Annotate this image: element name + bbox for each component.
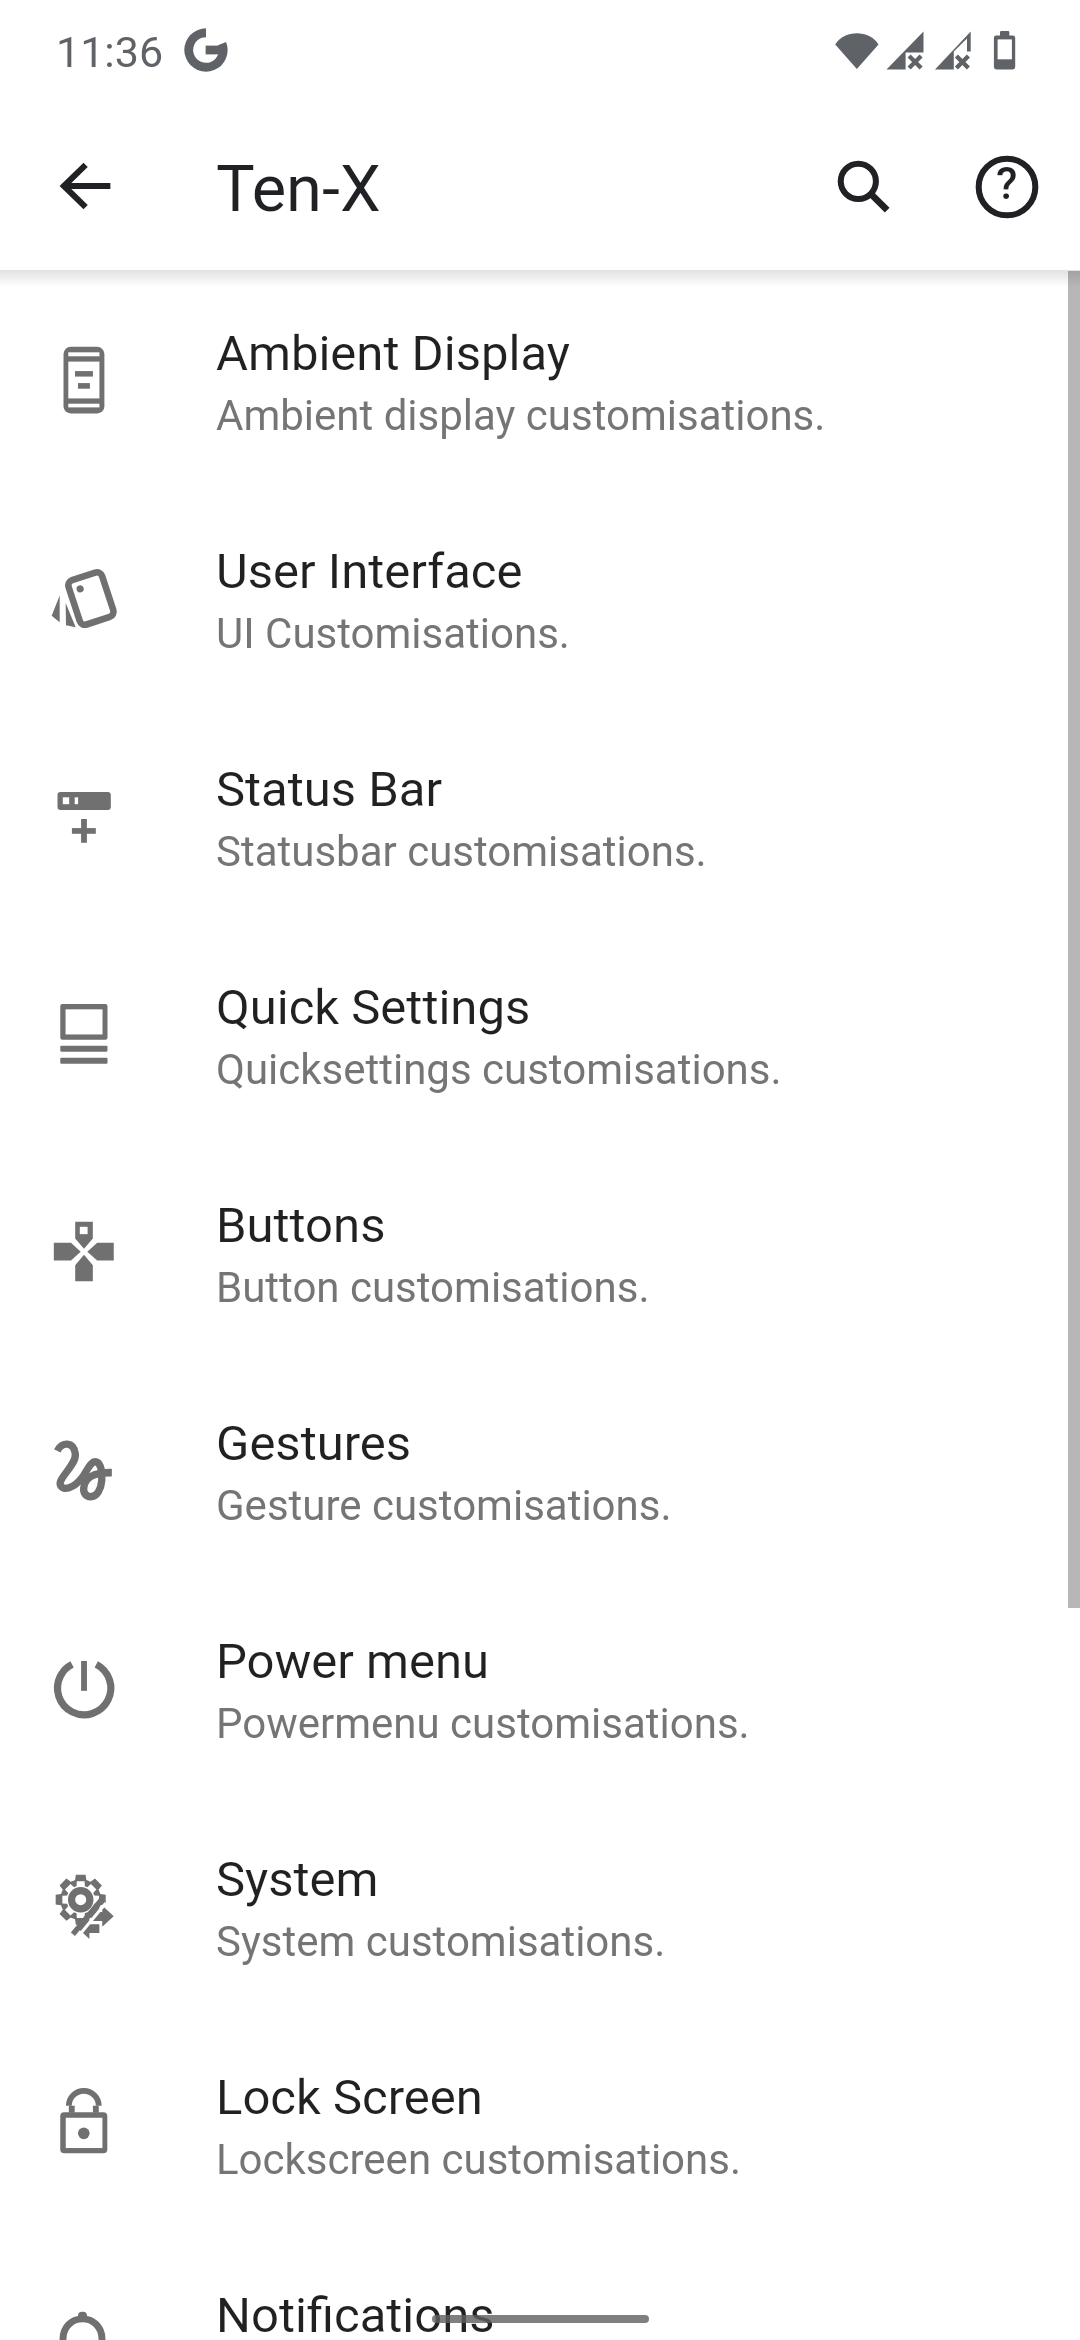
button[interactable]: Search [813,136,913,236]
staticText: Ambient display customisations. [216,391,826,440]
button[interactable]: Navigate up [37,136,137,236]
button[interactable]: Buttons [0,1153,1080,1371]
staticText: System customisations. [216,1917,666,1966]
staticText: System [216,1851,379,1908]
staticText: Ambient Display [216,325,570,382]
button[interactable]: Help [957,137,1057,237]
staticText: Buttons [216,1197,386,1254]
staticText: Gestures [216,1415,412,1472]
button[interactable]: Ambient Display [0,281,1080,499]
staticText: Notifications [216,2287,495,2340]
button[interactable]: Status Bar [0,717,1080,935]
staticText: Gesture customisations. [216,1481,672,1530]
staticText: Button customisations. [216,1263,650,1312]
button[interactable]: Notifications [0,2243,1080,2340]
staticText: Lock Screen [216,2069,483,2126]
button[interactable]: System [0,1807,1080,2025]
staticText: Status Bar [216,761,443,818]
staticText: Lockscreen customisations. [216,2135,742,2184]
staticText: Quicksettings customisations. [216,1045,782,1094]
button[interactable]: User Interface [0,499,1080,717]
staticText: User Interface [216,543,523,600]
staticText: Quick Settings [216,979,531,1036]
button[interactable]: Quick Settings [0,935,1080,1153]
staticText: 11:36 [56,27,164,77]
staticText: Power menu [216,1633,490,1690]
staticText: Powermenu customisations. [216,1699,750,1748]
button[interactable]: Lock Screen [0,2025,1080,2243]
staticText: Ten-X [216,151,381,227]
staticText: UI Customisations. [216,609,570,658]
button[interactable]: Gestures [0,1371,1080,1589]
staticText: ? [996,158,1018,210]
button[interactable]: Power menu [0,1589,1080,1807]
staticText: Statusbar customisations. [216,827,707,876]
